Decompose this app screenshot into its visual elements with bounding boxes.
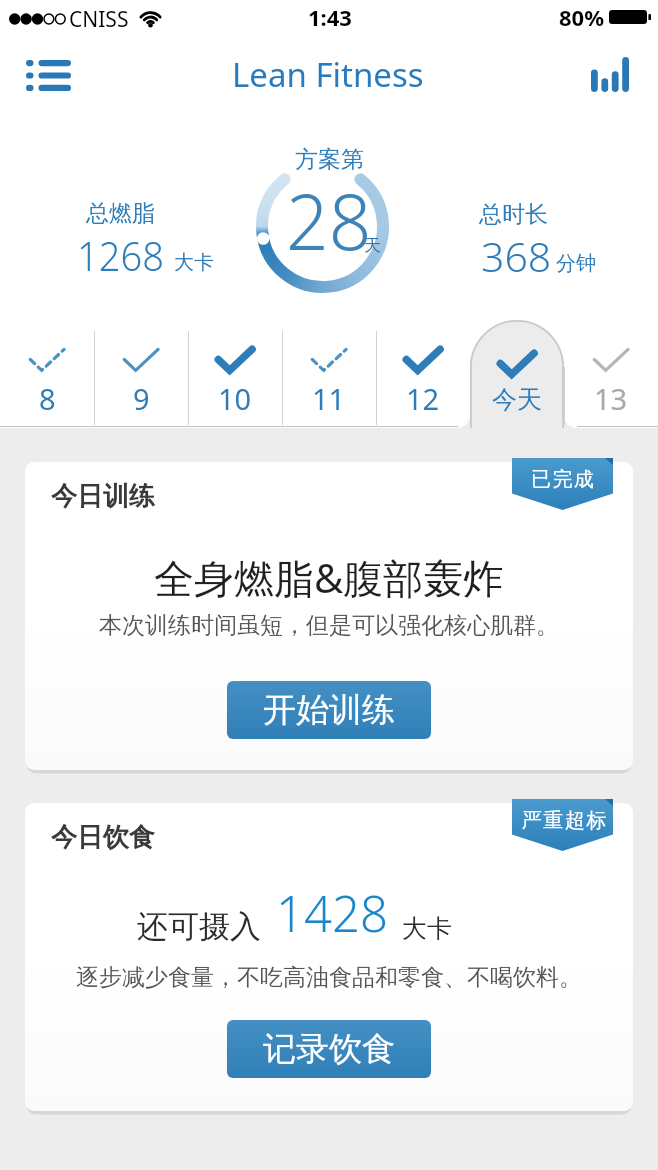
- staticText: 天: [364, 235, 381, 256]
- staticText: 今天: [492, 384, 542, 415]
- button[interactable]: 13: [564, 320, 658, 427]
- staticText: 记录饮食: [263, 1028, 395, 1070]
- staticText: 368: [481, 228, 552, 284]
- staticText: 开始训练: [263, 689, 395, 731]
- staticText: 1428: [276, 880, 388, 947]
- button[interactable]: 10: [188, 320, 282, 427]
- staticText: 全身燃脂&腹部轰炸: [154, 550, 504, 605]
- staticText: 80%: [559, 2, 605, 32]
- button[interactable]: Statistics: [576, 46, 642, 104]
- staticText: 8: [39, 379, 56, 418]
- button[interactable]: 开始训练: [227, 681, 431, 739]
- staticText: 大卡: [402, 913, 452, 944]
- button[interactable]: 9: [94, 320, 188, 427]
- button[interactable]: 11: [282, 320, 376, 427]
- staticText: Lean Fitness: [232, 52, 424, 97]
- staticText: 大卡: [174, 250, 214, 275]
- staticText: 分钟: [556, 251, 596, 276]
- staticText: 总燃脂: [86, 199, 155, 228]
- staticText: 总时长: [479, 200, 548, 229]
- button[interactable]: 今天: [470, 320, 564, 427]
- staticText: 12: [406, 379, 440, 418]
- staticText: 1268: [77, 227, 164, 283]
- staticText: CNISS: [69, 5, 129, 34]
- button[interactable]: 8: [0, 320, 94, 427]
- staticText: 严重超标: [521, 808, 607, 833]
- staticText: 今日饮食: [51, 821, 155, 854]
- staticText: 逐步减少食量，不吃高油食品和零食、不喝饮料。: [76, 963, 582, 992]
- staticText: 还可摄入: [137, 907, 261, 946]
- button[interactable]: 12: [376, 320, 470, 427]
- button[interactable]: Menu: [8, 46, 88, 104]
- staticText: 11: [312, 379, 346, 418]
- staticText: 10: [218, 379, 252, 418]
- staticText: 本次训练时间虽短，但是可以强化核心肌群。: [99, 611, 559, 640]
- staticText: 已完成: [531, 467, 596, 492]
- staticText: 1:43: [308, 2, 352, 32]
- button[interactable]: 记录饮食: [227, 1020, 431, 1078]
- staticText: 13: [594, 379, 628, 418]
- staticText: 9: [133, 379, 150, 418]
- staticText: 28: [286, 168, 371, 273]
- staticText: 今日训练: [51, 480, 155, 513]
- staticText: 方案第: [295, 145, 364, 174]
